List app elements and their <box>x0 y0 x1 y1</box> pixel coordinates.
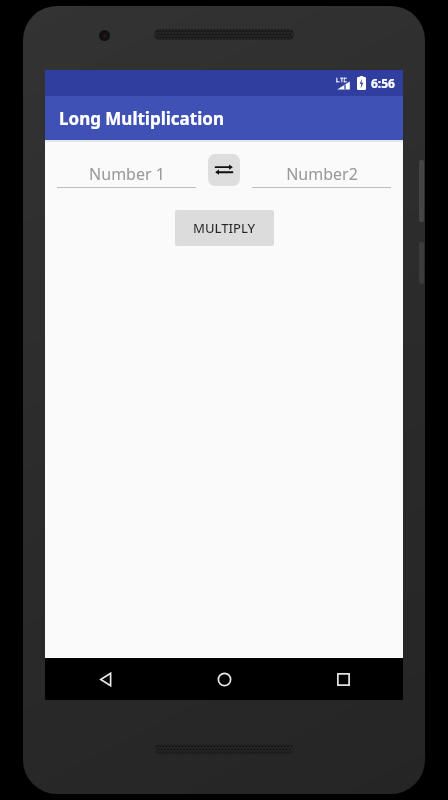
button[interactable]: Number 1 <box>53 161 200 188</box>
staticText: Number 1 <box>89 163 165 185</box>
staticText: MULTIPLY <box>193 219 256 237</box>
staticText: Number2 <box>286 163 358 185</box>
staticText: 6:56 <box>371 75 395 91</box>
button[interactable]: Back <box>45 658 165 700</box>
button[interactable]: Swap numbers <box>208 154 240 186</box>
button[interactable]: Number2 <box>248 161 395 188</box>
button[interactable]: MULTIPLY <box>175 210 274 246</box>
staticText: Long Multiplication <box>59 107 224 130</box>
button[interactable]: Recent apps <box>284 658 403 700</box>
button[interactable]: Home <box>165 658 284 700</box>
